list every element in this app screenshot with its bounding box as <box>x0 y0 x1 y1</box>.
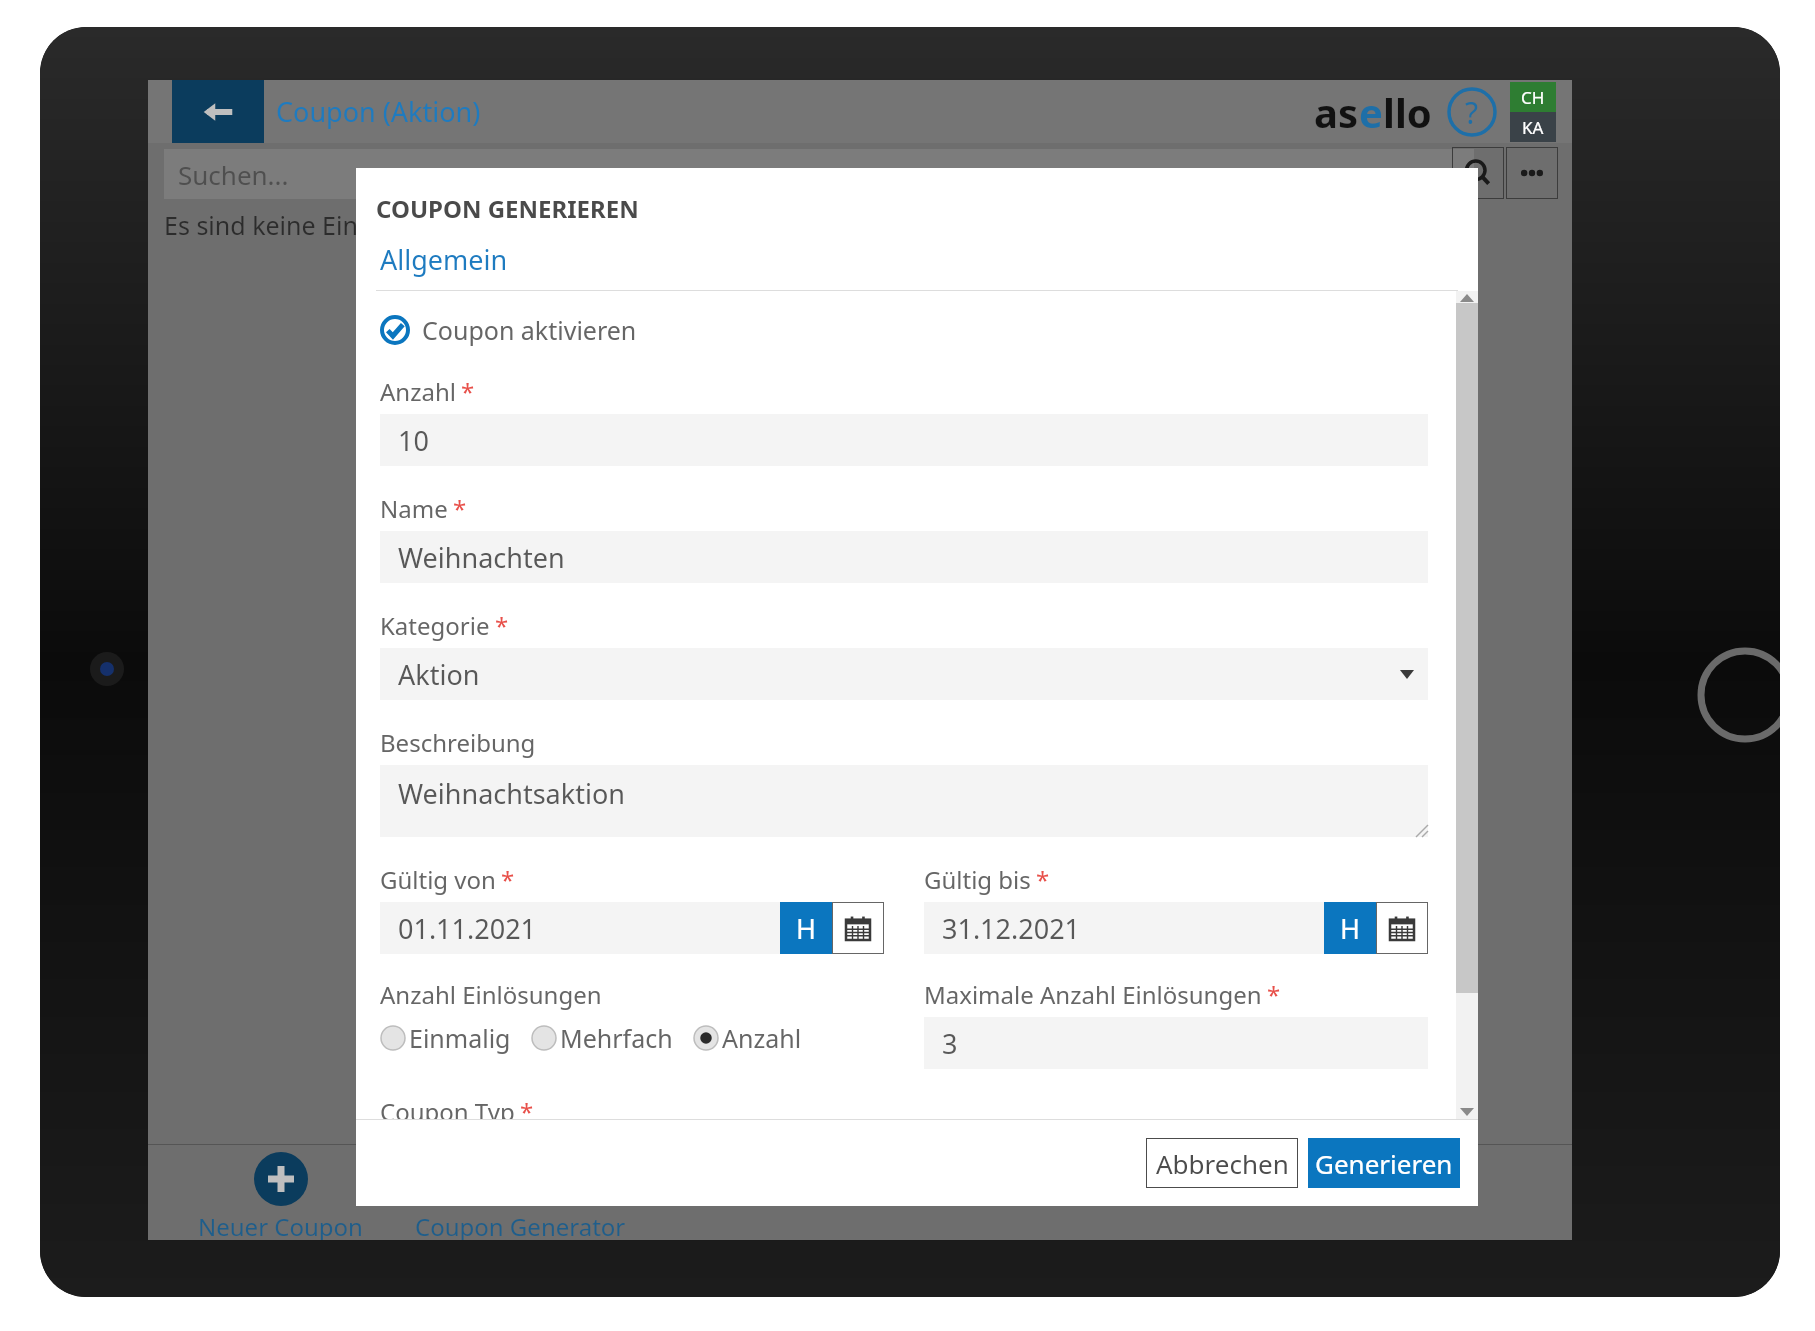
button[interactable]: Zurück <box>172 80 264 143</box>
staticText: e <box>1359 85 1383 139</box>
staticText: Name <box>380 492 448 525</box>
staticText: Abbrechen <box>1156 1146 1289 1181</box>
button[interactable]: Generieren <box>1308 1138 1460 1188</box>
staticText: 01.11.2021 <box>398 910 537 947</box>
button[interactable]: Neuer Coupon <box>198 1152 363 1240</box>
staticText: Coupon aktivieren <box>422 313 637 347</box>
staticText: Anzahl <box>380 375 456 408</box>
staticText: Mehrfach <box>560 1021 673 1055</box>
staticText: * <box>453 492 467 525</box>
staticText: Gültig von <box>380 863 496 896</box>
button[interactable]: Mehrfach <box>531 1021 673 1055</box>
staticText: Weihnachten <box>398 539 565 576</box>
staticText: Suchen... <box>178 157 289 192</box>
button[interactable]: 31.12.2021 <box>924 902 1324 954</box>
staticText: Generieren <box>1315 1146 1453 1181</box>
staticText: KA <box>1522 116 1544 139</box>
staticText: ? <box>1465 92 1479 133</box>
button[interactable]: Coupon Generator <box>415 1152 626 1240</box>
button[interactable]: Anzahl <box>693 1021 802 1055</box>
staticText: H <box>1340 910 1361 947</box>
staticText: 3 <box>942 1025 958 1062</box>
button[interactable]: Aktion <box>380 648 1428 700</box>
staticText: Anzahl <box>722 1021 802 1055</box>
staticText: Coupon Typ <box>380 1095 515 1119</box>
staticText: * <box>461 375 475 408</box>
button[interactable]: Suchen... <box>164 149 1474 199</box>
button[interactable]: 01.11.2021 <box>380 902 780 954</box>
staticText: Gültig bis <box>924 863 1031 896</box>
staticText: * <box>495 609 509 642</box>
button[interactable]: Abbrechen <box>1146 1138 1298 1188</box>
staticText: Coupon (Aktion) <box>276 93 481 130</box>
button[interactable]: Mehr <box>1506 147 1558 199</box>
button[interactable]: H <box>780 902 832 954</box>
staticText: Allgemein <box>380 241 508 278</box>
staticText: Weihnachtsaktion <box>398 775 625 812</box>
button[interactable]: Coupon aktivieren <box>380 313 637 347</box>
button[interactable]: Kalender <box>832 902 884 954</box>
staticText: Neuer Coupon <box>198 1210 363 1240</box>
staticText: Es sind keine Einträge vorhanden <box>164 208 555 242</box>
staticText: COUPON GENERIEREN <box>376 192 639 225</box>
staticText: H <box>796 910 817 947</box>
staticText: 10 <box>398 422 429 459</box>
button[interactable]: Einmalig <box>380 1021 511 1055</box>
staticText: * <box>1267 978 1281 1011</box>
staticText: * <box>1036 863 1050 896</box>
button[interactable]: Hilfe <box>1446 86 1498 138</box>
staticText: * <box>501 863 515 896</box>
button[interactable]: 3 <box>924 1017 1428 1069</box>
staticText: Coupon Generator <box>415 1210 626 1240</box>
button[interactable]: Suchen <box>1452 147 1504 199</box>
staticText: CH <box>1521 86 1545 109</box>
staticText: as <box>1314 85 1359 139</box>
staticText: llo <box>1383 85 1432 139</box>
button[interactable]: Kalender <box>1376 902 1428 954</box>
button[interactable]: Weihnachten <box>380 531 1428 583</box>
staticText: * <box>520 1095 534 1119</box>
button[interactable]: H <box>1324 902 1376 954</box>
staticText: Einmalig <box>409 1021 511 1055</box>
staticText: Aktion <box>398 656 480 693</box>
staticText: Anzahl Einlösungen <box>380 978 602 1011</box>
button[interactable]: 10 <box>380 414 1428 466</box>
staticText: Maximale Anzahl Einlösungen <box>924 978 1262 1011</box>
button[interactable]: Weihnachtsaktion <box>380 765 1428 837</box>
staticText: Beschreibung <box>380 726 536 759</box>
staticText: Kategorie <box>380 609 490 642</box>
staticText: 31.12.2021 <box>942 910 1081 947</box>
